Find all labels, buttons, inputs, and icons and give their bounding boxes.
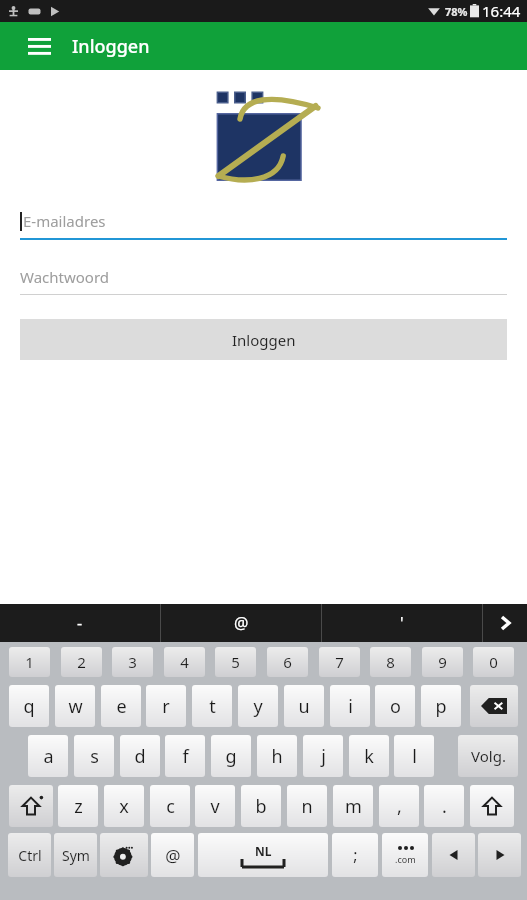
button[interactable]: q [9,685,49,727]
button[interactable]: w [55,685,95,727]
button[interactable]: l [394,735,434,777]
button[interactable]: a [28,735,68,777]
staticText: p [435,694,447,719]
button[interactable]: More suggestions [483,604,527,642]
staticText: 78% [445,4,468,19]
button[interactable]: , [379,785,419,827]
staticText: . [442,794,447,819]
button[interactable]: 1 [9,647,50,677]
staticText: Inloggen [72,34,150,59]
staticText: s [90,744,99,769]
button[interactable]: j [303,735,343,777]
staticText: 9 [438,652,447,672]
staticText: 8 [386,652,395,672]
button[interactable]: Backspace [470,685,518,727]
button[interactable]: Menu [22,29,56,63]
button[interactable]: dot com [382,833,428,877]
button[interactable]: p [421,685,461,727]
button[interactable]: t [192,685,232,727]
staticText: Ctrl [18,846,42,865]
button[interactable]: r [146,685,186,727]
staticText: , [397,794,402,819]
button[interactable]: - [0,604,160,642]
button[interactable]: 3 [112,647,153,677]
staticText: n [301,794,313,819]
staticText: o [390,694,401,719]
staticText: 6 [283,652,292,672]
staticText: Volg. [471,746,506,766]
staticText: Sym [62,846,90,865]
staticText: - [77,612,83,634]
button[interactable]: Space [198,833,328,877]
button[interactable]: Right [478,833,521,877]
button[interactable]: z [58,785,98,827]
staticText: x [119,794,129,819]
button[interactable]: 5 [215,647,256,677]
button[interactable]: o [375,685,415,727]
button[interactable]: Inloggen [20,319,507,360]
staticText: ; [353,844,358,866]
staticText: g [225,744,237,769]
staticText: f [182,744,189,769]
button[interactable]: e [101,685,141,727]
button[interactable]: h [257,735,297,777]
staticText: 1 [25,652,34,672]
button[interactable]: . [424,785,464,827]
button[interactable]: Left [432,833,475,877]
button[interactable]: 9 [422,647,463,677]
staticText: z [74,794,83,819]
staticText: .com [395,853,416,865]
button[interactable]: Volg. [458,735,518,777]
button[interactable]: i [330,685,370,727]
staticText: Inloggen [232,330,296,350]
button[interactable]: b [241,785,281,827]
button[interactable]: Shift [9,785,53,827]
button[interactable]: f [165,735,205,777]
staticText: v [210,794,220,819]
button[interactable]: Shift [470,785,514,827]
button[interactable]: d [120,735,160,777]
button[interactable]: 2 [61,647,102,677]
button[interactable]: 4 [164,647,205,677]
button[interactable]: Settings [100,833,148,877]
button[interactable]: n [287,785,327,827]
staticText: i [348,694,353,719]
button[interactable]: 6 [267,647,308,677]
staticText: 7 [335,652,344,672]
button[interactable]: 8 [370,647,411,677]
button[interactable]: Ctrl [8,833,51,877]
button[interactable]: c [150,785,190,827]
staticText: q [23,694,35,719]
button[interactable]: ' [322,604,482,642]
button[interactable]: Sym [54,833,97,877]
button[interactable]: x [104,785,144,827]
staticText: w [68,694,83,719]
button[interactable]: g [211,735,251,777]
staticText: @ [234,612,249,634]
button[interactable]: v [195,785,235,827]
staticText: k [364,744,374,769]
staticText: ' [400,612,404,634]
button[interactable]: 0 [473,647,514,677]
staticText: @ [165,844,181,867]
button[interactable]: m [333,785,373,827]
staticText: 0 [489,652,498,672]
staticText: Wachtwoord [20,267,110,287]
staticText: l [412,744,417,769]
staticText: j [321,744,326,769]
staticText: a [43,744,54,769]
button[interactable]: s [74,735,114,777]
button[interactable]: 7 [319,647,360,677]
staticText: E-mailadres [23,211,106,231]
staticText: c [166,794,175,819]
staticText: 2 [77,652,86,672]
staticText: 16:44 [482,1,521,21]
button[interactable]: k [349,735,389,777]
button[interactable]: u [284,685,324,727]
button[interactable]: y [238,685,278,727]
staticText: 5 [231,652,240,672]
staticText: u [298,694,310,719]
button[interactable]: @ [161,604,321,642]
button[interactable]: ; [332,833,378,877]
button[interactable]: @ [151,833,194,877]
